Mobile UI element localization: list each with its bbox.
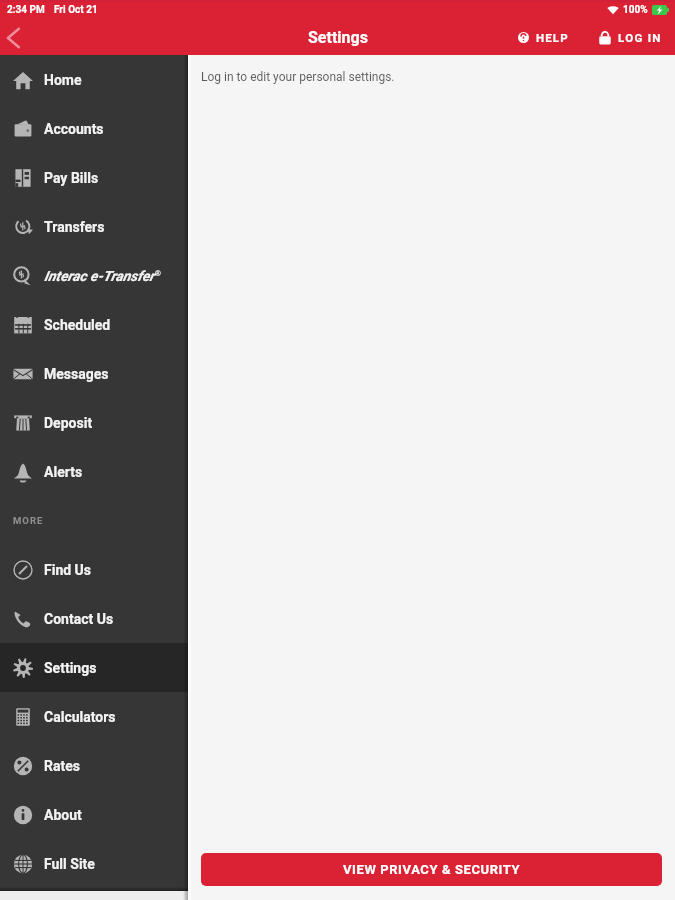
button[interactable]: Calculators [0, 692, 188, 741]
staticText: 100% [623, 4, 648, 16]
staticText: Alerts [44, 464, 83, 480]
staticText: Messages [44, 366, 109, 382]
staticText: Calculators [44, 709, 116, 725]
staticText: Fri Oct 21 [54, 4, 98, 16]
staticText: Contact Us [44, 611, 114, 627]
button[interactable]: Accounts [0, 104, 188, 153]
button[interactable]: Find Us [0, 545, 188, 594]
button[interactable]: Interac e-Transfer [0, 251, 188, 300]
button[interactable]: Pay Bills [0, 153, 188, 202]
staticText: Accounts [44, 121, 104, 137]
staticText: LOG IN [618, 31, 662, 44]
button[interactable]: Transfers [0, 202, 188, 251]
button[interactable]: Deposit [0, 398, 188, 447]
button[interactable]: Full Site [0, 839, 188, 888]
staticText: Transfers [44, 219, 105, 235]
button[interactable]: Contact Us [0, 594, 188, 643]
staticText: Pay Bills [44, 170, 99, 186]
staticText: Settings [44, 660, 97, 676]
staticText: Log in to edit your personal settings. [201, 70, 395, 84]
button[interactable]: LOG IN [597, 25, 664, 50]
staticText: Settings [308, 28, 368, 47]
button[interactable]: About [0, 790, 188, 839]
staticText: Interac e-Transfer [44, 268, 155, 284]
staticText: MORE [13, 515, 44, 526]
staticText: Scheduled [44, 317, 111, 333]
button[interactable]: Home [0, 55, 188, 104]
button[interactable]: Rates [0, 741, 188, 790]
button[interactable]: Messages [0, 349, 188, 398]
staticText: Deposit [44, 415, 93, 431]
button[interactable]: VIEW PRIVACY & SECURITY [201, 853, 662, 886]
staticText: VIEW PRIVACY & SECURITY [343, 862, 521, 877]
staticText: Home [44, 72, 82, 88]
staticText: Full Site [44, 856, 95, 872]
staticText: About [44, 807, 82, 823]
staticText: Find Us [44, 562, 92, 578]
staticText: 2:34 PM [7, 4, 45, 16]
staticText: HELP [536, 31, 569, 44]
button[interactable]: Scheduled [0, 300, 188, 349]
button[interactable]: Back [0, 20, 26, 55]
button[interactable]: Alerts [0, 447, 188, 496]
button[interactable]: HELP [516, 26, 571, 49]
staticText: Rates [44, 758, 80, 774]
button[interactable]: Settings [0, 643, 188, 692]
staticText: ® [155, 269, 161, 278]
